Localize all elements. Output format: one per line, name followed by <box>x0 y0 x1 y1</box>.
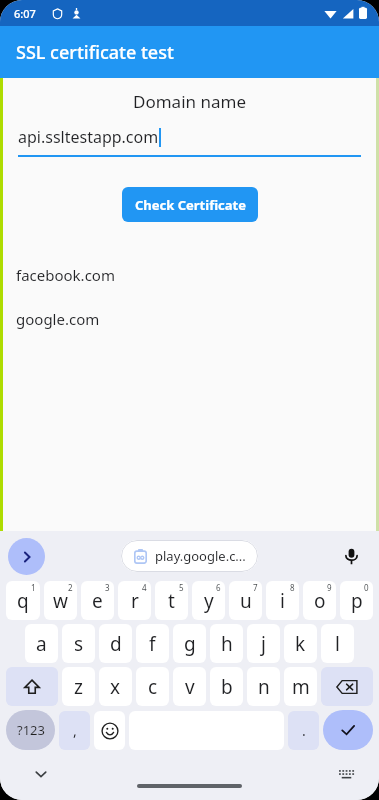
button[interactable]: y <box>192 581 225 620</box>
button[interactable]: google.com <box>0 297 379 341</box>
staticText: i <box>280 588 285 614</box>
button[interactable]: Emoji <box>94 711 125 750</box>
staticText: a <box>36 631 47 657</box>
button[interactable]: o <box>303 581 336 620</box>
staticText: u <box>240 588 252 614</box>
staticText: r <box>131 588 139 614</box>
button[interactable]: i <box>266 581 299 620</box>
staticText: Domain name <box>0 90 379 113</box>
staticText: 8 <box>290 582 295 593</box>
staticText: b <box>221 674 233 700</box>
button[interactable]: a <box>25 624 58 663</box>
staticText: SSL certificate test <box>16 40 174 65</box>
button[interactable]: v <box>173 667 206 706</box>
button[interactable]: Enter <box>323 710 373 750</box>
staticText: t <box>168 588 175 614</box>
staticText: h <box>221 631 233 657</box>
staticText: . <box>302 721 306 740</box>
staticText: l <box>335 631 340 657</box>
staticText: s <box>74 631 84 657</box>
staticText: y <box>204 588 214 614</box>
button[interactable]: . <box>288 711 319 750</box>
staticText: api.ssltestapp.com <box>18 126 159 148</box>
staticText: , <box>73 721 77 740</box>
staticText: 6 <box>216 582 221 593</box>
button[interactable]: k <box>284 624 317 663</box>
staticText: x <box>110 674 121 700</box>
button[interactable]: l <box>321 624 354 663</box>
staticText: ?123 <box>17 721 45 739</box>
staticText: 7 <box>253 582 258 593</box>
button[interactable]: Voice input <box>337 542 365 570</box>
staticText: w <box>53 588 68 614</box>
button[interactable]: b <box>210 667 243 706</box>
staticText: e <box>92 588 103 614</box>
button[interactable]: h <box>210 624 243 663</box>
button[interactable]: Shift <box>6 667 58 706</box>
staticText: 4 <box>142 582 147 593</box>
staticText: n <box>258 674 270 700</box>
button[interactable]: r <box>118 581 151 620</box>
button[interactable]: d <box>99 624 132 663</box>
button[interactable]: e <box>81 581 114 620</box>
staticText: v <box>185 674 195 700</box>
staticText: play.google.c... <box>155 547 246 565</box>
staticText: 5 <box>179 582 184 593</box>
staticText: Check Certificate <box>135 196 246 214</box>
staticText: 9 <box>327 582 332 593</box>
staticText: j <box>261 631 266 657</box>
button[interactable]: u <box>229 581 262 620</box>
staticText: z <box>74 674 83 700</box>
staticText: g <box>184 631 196 657</box>
button[interactable]: n <box>247 667 280 706</box>
staticText: m <box>292 674 310 700</box>
button[interactable]: c <box>136 667 169 706</box>
button[interactable]: Switch keyboard <box>335 763 357 785</box>
button[interactable]: s <box>62 624 95 663</box>
button[interactable]: ?123 <box>6 710 55 750</box>
staticText: f <box>149 631 156 657</box>
staticText: 0 <box>364 582 369 593</box>
staticText: 3 <box>105 582 110 593</box>
button[interactable]: Backspace <box>321 667 373 706</box>
button[interactable]: play.google.c... <box>121 540 258 572</box>
button[interactable]: m <box>284 667 317 706</box>
staticText: c <box>148 674 158 700</box>
button[interactable]: x <box>99 667 132 706</box>
staticText: 2 <box>68 582 73 593</box>
button[interactable]: g <box>173 624 206 663</box>
staticText: q <box>17 588 29 614</box>
button[interactable]: , <box>59 711 90 750</box>
button[interactable]: z <box>62 667 95 706</box>
button[interactable]: Hide keyboard <box>28 761 54 787</box>
button[interactable]: f <box>136 624 169 663</box>
staticText: 1 <box>31 582 36 593</box>
staticText: p <box>351 588 363 614</box>
staticText: 6:07 <box>14 6 36 21</box>
button[interactable]: facebook.com <box>0 253 379 297</box>
staticText: google.com <box>16 309 100 329</box>
staticText: facebook.com <box>16 265 115 285</box>
button[interactable]: j <box>247 624 280 663</box>
button[interactable]: q <box>6 581 40 620</box>
button[interactable]: Expand toolbar <box>8 538 45 575</box>
button[interactable]: t <box>155 581 188 620</box>
staticText: k <box>295 631 306 657</box>
staticText: o <box>314 588 326 614</box>
button[interactable]: p <box>340 581 373 620</box>
staticText: d <box>110 631 122 657</box>
button[interactable]: Check Certificate <box>122 187 258 222</box>
button[interactable]: w <box>44 581 77 620</box>
